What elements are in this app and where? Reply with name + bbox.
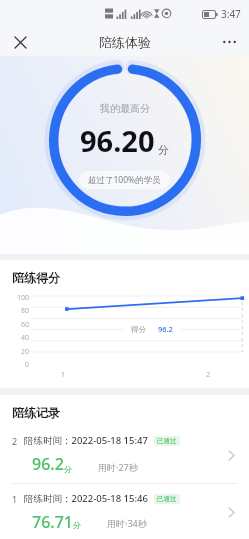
staticText: 96.2 — [32, 453, 64, 475]
button[interactable]: Close — [6, 28, 34, 56]
staticText: 1 — [61, 370, 66, 380]
staticText: 用时·27秒 — [98, 461, 138, 473]
staticText: 3:47 — [221, 7, 241, 21]
staticText: 已通过 — [157, 437, 177, 445]
staticText: 陪练体验 — [99, 34, 151, 50]
staticText: 我的最高分 — [100, 102, 150, 115]
staticText: 用时·34秒 — [107, 517, 147, 529]
staticText: 2 — [206, 370, 211, 380]
button[interactable]: More options — [215, 28, 243, 56]
staticText: 2 — [12, 435, 18, 447]
staticText: 陪练时间：2022-05-18 15:47 — [24, 434, 148, 447]
staticText: 分 — [64, 464, 72, 474]
staticText: 陪练时间：2022-05-18 15:46 — [24, 492, 148, 505]
staticText: 76.71 — [32, 511, 73, 531]
staticText: 已通过 — [157, 495, 177, 503]
staticText: 分 — [158, 143, 169, 157]
staticText: 陪练记录 — [12, 405, 60, 420]
staticText: 96.20 — [80, 121, 155, 160]
staticText: 40 — [21, 333, 30, 343]
staticText: 60 — [21, 320, 30, 330]
button[interactable]: 1 — [0, 484, 249, 539]
staticText: 0 — [25, 360, 30, 370]
staticText: 超过了100%的学员 — [88, 174, 161, 186]
staticText: 96.2 — [158, 324, 173, 334]
staticText: 1 — [12, 493, 18, 505]
staticText: 80 — [21, 306, 30, 316]
staticText: 分 — [73, 520, 81, 530]
staticText: 陪练得分 — [12, 270, 60, 285]
button[interactable]: 2 — [0, 426, 249, 483]
staticText: 20 — [21, 347, 30, 357]
staticText: 得分 — [131, 325, 146, 334]
staticText: 100 — [17, 293, 30, 303]
